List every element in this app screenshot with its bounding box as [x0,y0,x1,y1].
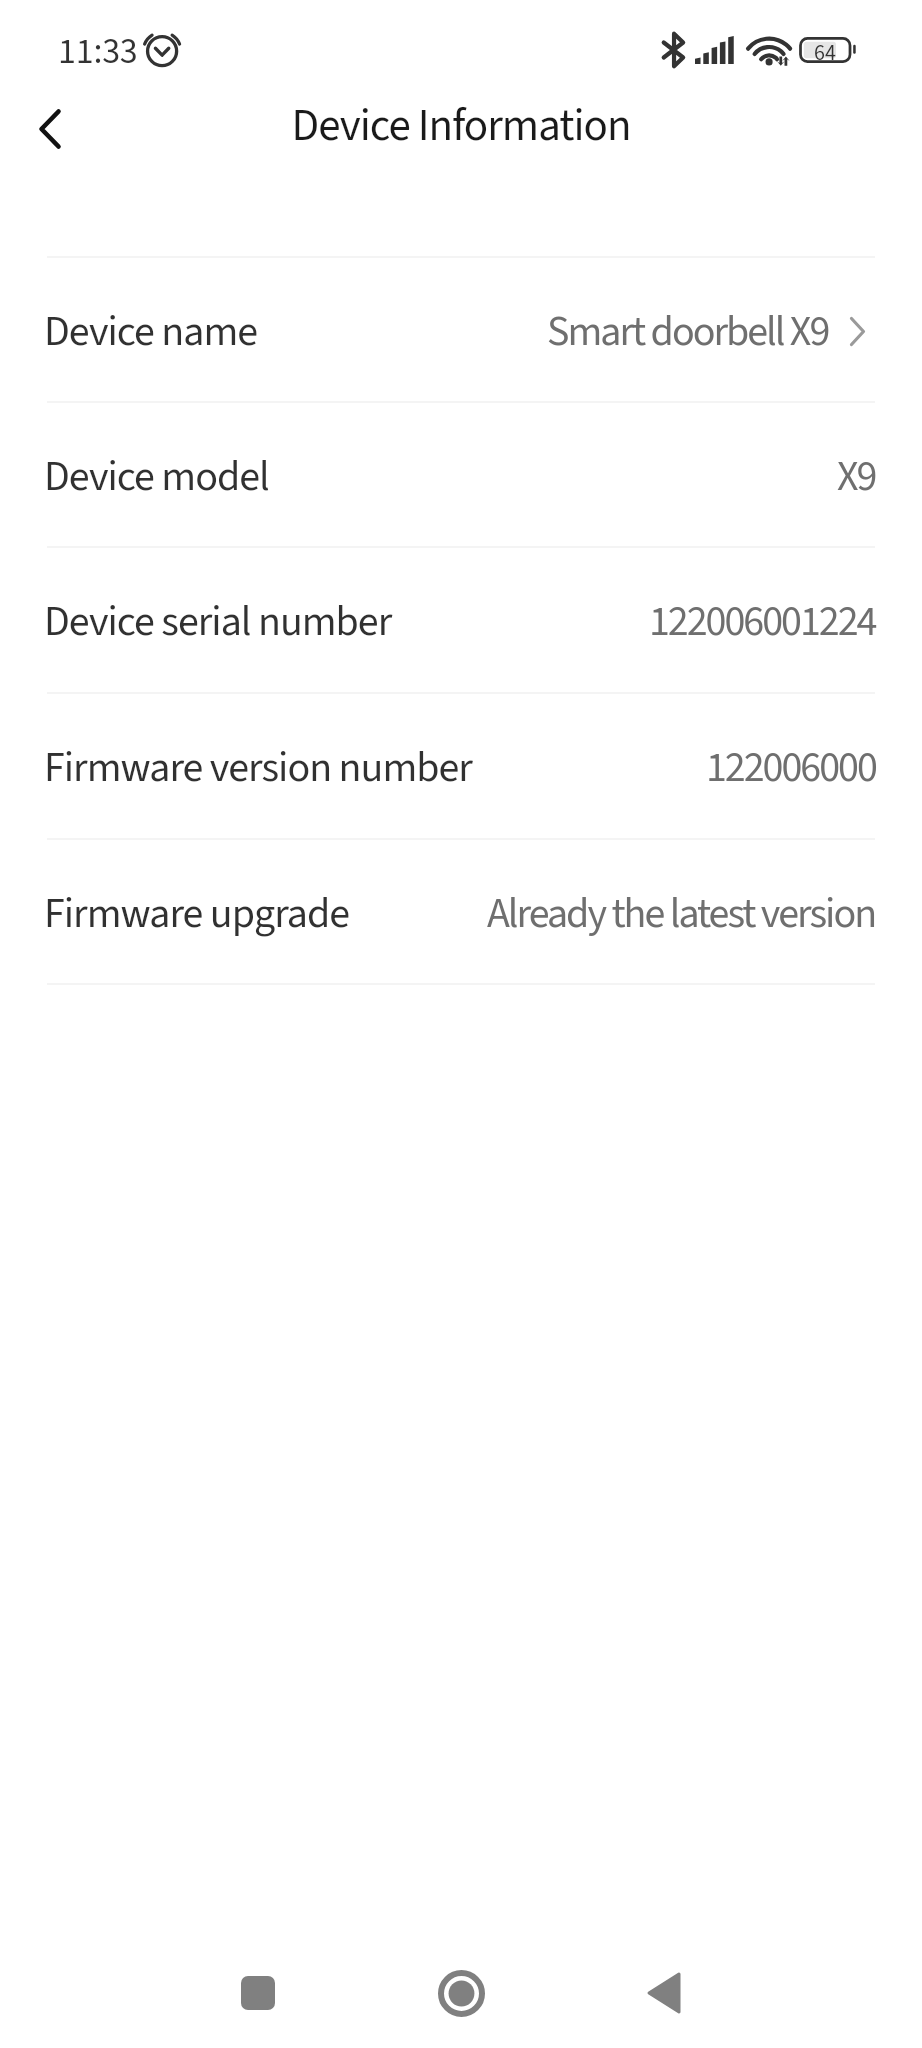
button[interactable]: Device name [0,258,922,401]
staticText: Already the latest version [487,884,876,944]
staticText: 11:33 [58,26,138,77]
staticText: Device Information [291,94,631,158]
staticText: 122006000 [706,738,876,798]
staticText: Smart doorbell X9 [547,302,829,362]
button[interactable]: Home [406,1938,516,2048]
button[interactable]: Firmware upgrade [0,840,922,983]
button[interactable]: Back [609,1938,719,2048]
staticText: 122006001224 [649,592,876,652]
button[interactable]: Device model [0,403,922,546]
button[interactable]: Firmware version number [0,694,922,838]
button[interactable]: Device serial number [0,548,922,692]
staticText: X9 [837,447,876,507]
button[interactable]: Recent apps [203,1938,313,2048]
staticText: Device serial number [44,592,392,652]
staticText: 64 [814,37,836,63]
staticText: Firmware version number [44,738,472,798]
staticText: Device model [44,447,269,507]
staticText: Device name [44,302,258,362]
staticText: Firmware upgrade [44,884,350,944]
button[interactable]: Back [6,85,94,173]
